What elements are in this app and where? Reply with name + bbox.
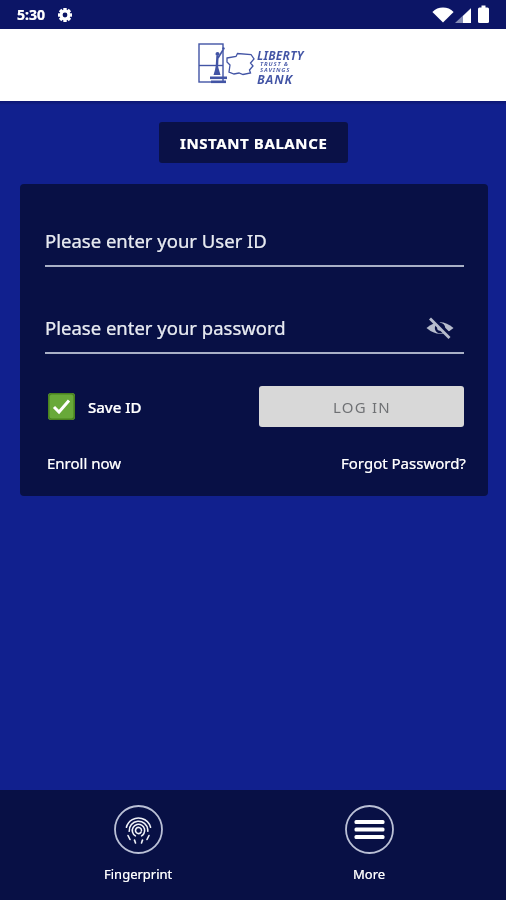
staticText: TRUST & xyxy=(260,60,289,68)
button[interactable] xyxy=(425,316,455,340)
staticText: BANK xyxy=(257,71,293,88)
staticText: More xyxy=(353,865,386,883)
staticText: Fingerprint xyxy=(104,865,173,883)
button[interactable] xyxy=(48,393,75,420)
staticText: SAVINGS xyxy=(260,66,291,74)
staticText: Please enter your password xyxy=(45,315,425,340)
button[interactable]: LOG IN xyxy=(259,386,464,427)
staticText: Save ID xyxy=(88,397,142,417)
button[interactable]: Fingerprint xyxy=(98,805,178,883)
button[interactable]: Enroll now xyxy=(47,453,122,473)
button[interactable]: More xyxy=(329,805,409,883)
staticText: LOG IN xyxy=(333,397,391,417)
staticText: LIBERTY xyxy=(257,47,304,63)
button[interactable]: Forgot Password? xyxy=(341,453,466,473)
staticText: 5:30 xyxy=(17,5,45,24)
staticText: Please enter your User ID xyxy=(45,228,267,253)
staticText: INSTANT BALANCE xyxy=(180,133,328,153)
button[interactable]: INSTANT BALANCE xyxy=(159,122,348,163)
